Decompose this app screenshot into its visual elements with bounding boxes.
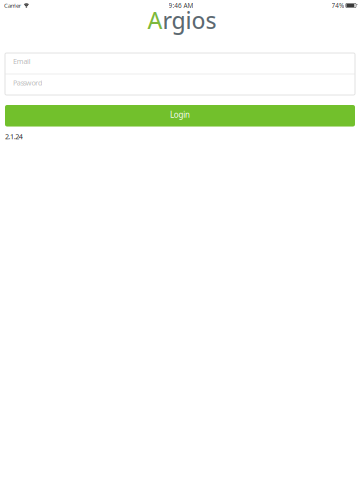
staticText: 74%	[332, 1, 344, 10]
staticText: Login	[170, 109, 190, 120]
staticText: rgios	[162, 4, 216, 36]
button[interactable]: Login	[5, 105, 355, 126]
staticText: Password	[13, 78, 42, 88]
staticText: A	[147, 4, 162, 36]
staticText: Carrier	[4, 1, 21, 10]
button[interactable]: Email	[5, 53, 355, 73]
staticText: 9:46 AM	[169, 1, 193, 10]
staticText: Email	[13, 56, 31, 66]
button[interactable]: Password	[5, 74, 355, 95]
staticText: 2.1.24	[5, 131, 23, 141]
